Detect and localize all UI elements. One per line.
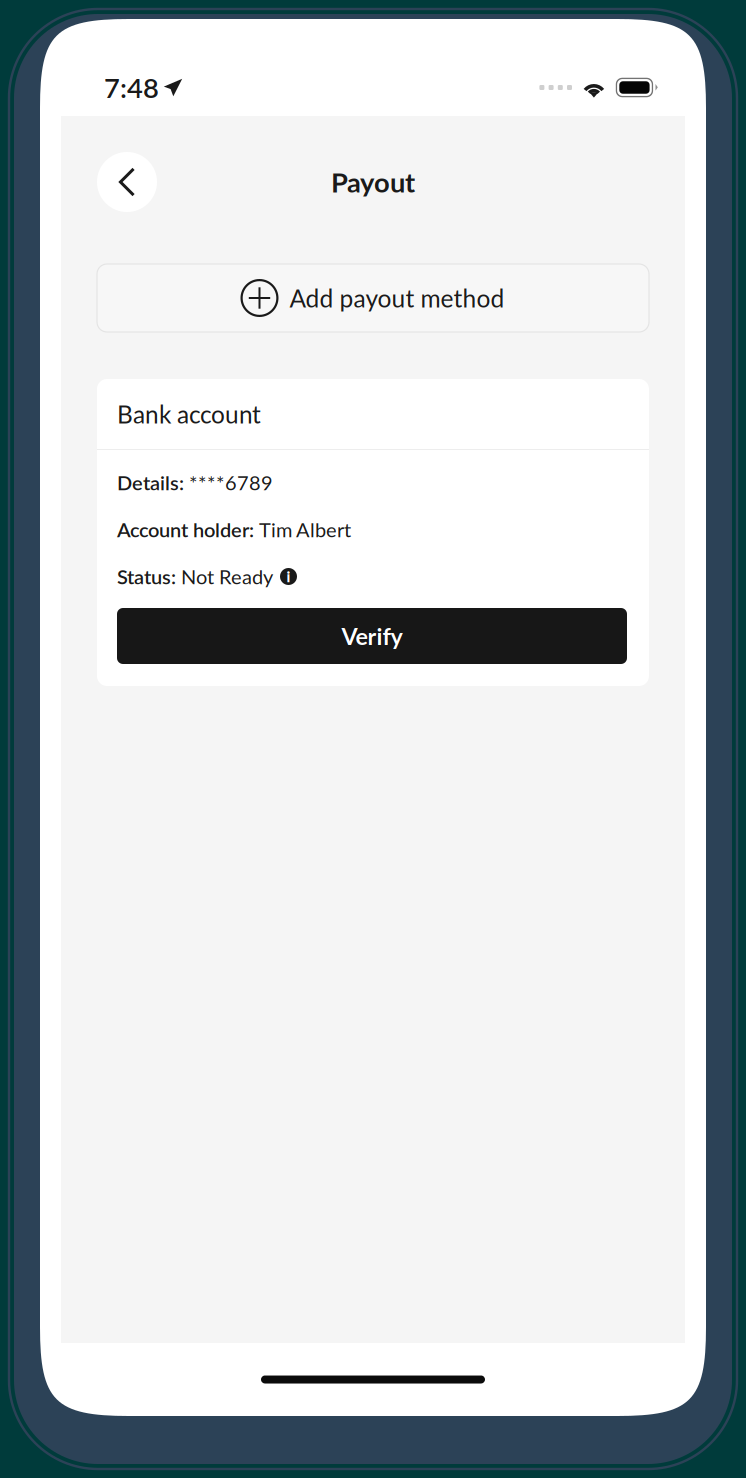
staticText: Tim Albert — [259, 517, 351, 541]
staticText: Not Ready — [181, 564, 273, 588]
staticText: 7:48 — [104, 71, 159, 104]
staticText: Verify — [341, 622, 402, 650]
staticText: Payout — [331, 166, 415, 198]
button[interactable]: Add payout method — [97, 264, 649, 332]
staticText: Bank account — [117, 399, 261, 429]
staticText: Details: — [117, 470, 189, 494]
staticText: Account holder: — [117, 517, 259, 541]
staticText: ****6789 — [189, 470, 273, 494]
button[interactable]: Verify — [117, 608, 627, 664]
staticText: i — [286, 568, 290, 585]
staticText: Add payout method — [289, 283, 504, 313]
button[interactable]: Back — [97, 152, 157, 212]
staticText: Status: — [117, 564, 181, 588]
